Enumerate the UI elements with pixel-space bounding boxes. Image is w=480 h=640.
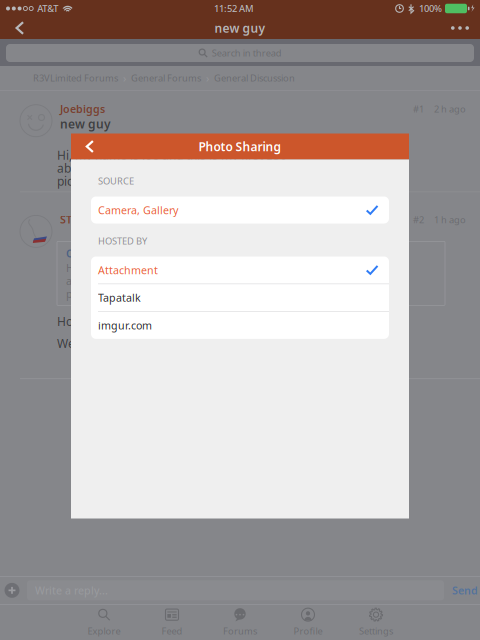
button[interactable]: Forums — [206, 604, 274, 640]
staticText: Settings — [359, 625, 393, 637]
staticText: Hi, my name is Joe and this is my first … — [66, 261, 276, 275]
button[interactable]: Profile — [274, 604, 342, 640]
staticText: › — [123, 71, 126, 85]
button[interactable]: General Discussion — [214, 72, 295, 84]
button[interactable]: imgur.com — [91, 312, 389, 339]
button[interactable]: Send — [452, 577, 480, 604]
staticText: General Forums — [131, 72, 201, 84]
staticText: Profile — [293, 625, 322, 637]
button[interactable]: More options — [440, 17, 480, 39]
button[interactable]: Search in thread — [0, 39, 480, 66]
button[interactable]: Settings — [342, 604, 410, 640]
staticText: 2 h ago — [434, 103, 466, 115]
staticText: 11:52 AM — [214, 2, 254, 15]
button[interactable]: Back — [0, 17, 40, 39]
staticText: › — [206, 71, 209, 85]
staticText: SOURCE — [98, 175, 134, 187]
button[interactable]: Feed — [138, 604, 206, 640]
staticText: Search in thread — [212, 47, 282, 59]
staticText: Photo Sharing — [198, 138, 281, 154]
staticText: Camera, Gallery — [98, 203, 178, 217]
button[interactable]: Attachment — [91, 256, 389, 283]
staticText: Write a reply... — [35, 583, 108, 597]
staticText: ST1NGRAY — [60, 212, 114, 227]
staticText: new guy — [214, 20, 265, 36]
staticText: Explore — [87, 625, 120, 637]
staticText: 1 h ago — [434, 213, 466, 226]
staticText: Attachment — [98, 263, 158, 277]
button[interactable]: Back — [71, 133, 109, 159]
staticText: Forums — [223, 625, 257, 637]
staticText: Hi, my name is Joe and this is my first … — [57, 147, 287, 163]
staticText: pictures is a huge problem every time. — [57, 173, 270, 189]
staticText: about to start this project and uploadin… — [57, 160, 279, 176]
staticText: #1 — [413, 103, 424, 115]
button[interactable]: Add attachment — [0, 577, 27, 604]
staticText: pictures is a huge problem every time. — [66, 287, 261, 301]
staticText: Send — [452, 583, 478, 597]
staticText: 100% — [419, 2, 442, 15]
button[interactable]: Explore — [70, 604, 138, 640]
staticText: about to start this project and uploadin… — [66, 274, 274, 288]
button[interactable]: General Forums — [131, 72, 201, 84]
staticText: #2 — [413, 213, 424, 226]
staticText: AT&T — [37, 2, 58, 15]
staticText: Originally Posted by Joebiggs — [66, 246, 219, 260]
staticText: Joebiggs — [60, 102, 105, 116]
staticText: Tapatalk — [98, 291, 141, 305]
staticText: HOSTED BY — [98, 235, 147, 247]
button[interactable]: Tapatalk — [91, 284, 389, 311]
staticText: Hosting pictures on imgur works well. — [57, 313, 265, 329]
staticText: Feed — [161, 625, 182, 637]
button[interactable]: Camera, Gallery — [91, 196, 389, 223]
staticText: Welcome to the forum! — [57, 335, 184, 351]
button[interactable]: R3VLimited Forums — [33, 72, 118, 84]
staticText: General Discussion — [214, 72, 295, 84]
staticText: R3VLimited Forums — [33, 72, 118, 84]
staticText: imgur.com — [98, 318, 152, 332]
staticText: new guy — [60, 116, 111, 132]
